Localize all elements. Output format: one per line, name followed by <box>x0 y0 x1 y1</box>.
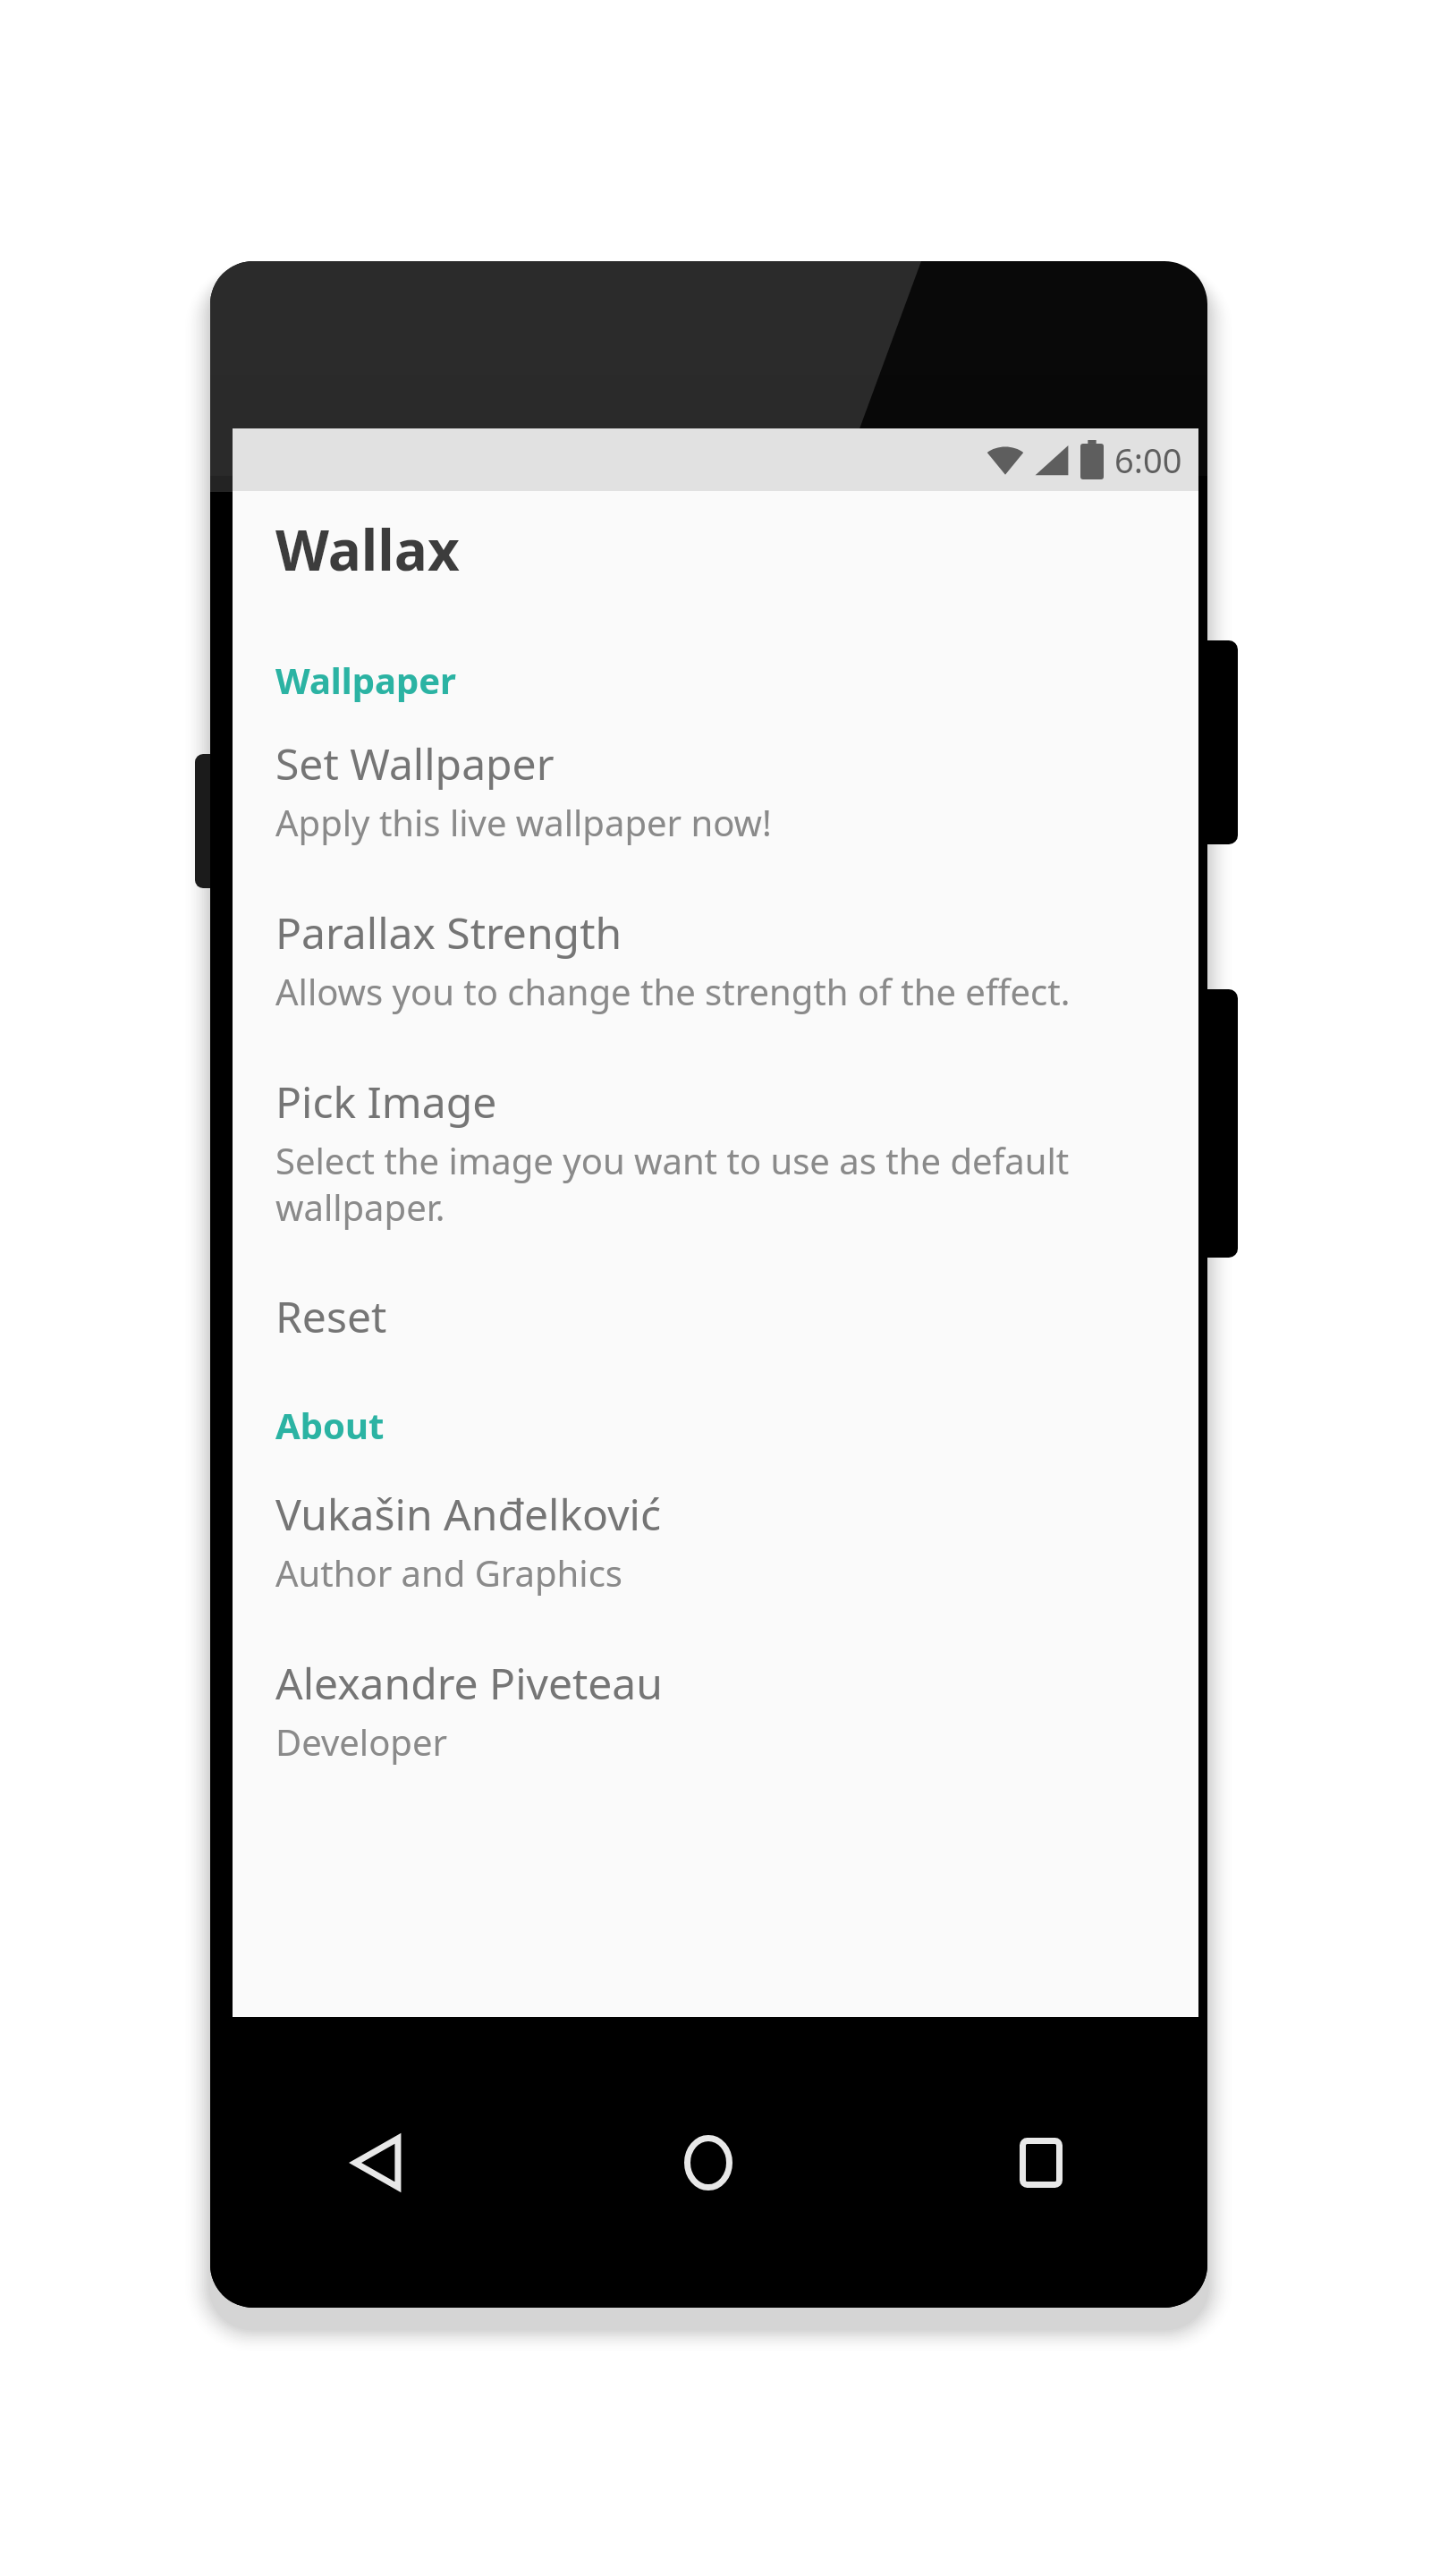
button[interactable]: Vukašin Anđelković <box>233 1449 1198 1597</box>
staticText: Parallax Strength <box>275 903 622 962</box>
staticText: Set Wallpaper <box>275 734 555 792</box>
button[interactable]: Set Wallpaper <box>233 704 1198 846</box>
staticText: Reset <box>275 1287 387 1345</box>
staticText: Select the image you want to use as the … <box>275 1136 1156 1232</box>
button[interactable]: Pick Image <box>233 1015 1198 1232</box>
button[interactable]: Back <box>210 2017 542 2308</box>
staticText: Wallpaper <box>275 656 456 704</box>
staticText: Pick Image <box>275 1072 497 1131</box>
button[interactable]: Home <box>542 2017 875 2308</box>
staticText: 6:00 <box>1114 436 1182 483</box>
staticText: Allows you to change the strength of the… <box>275 967 1071 1015</box>
staticText: Apply this live wallpaper now! <box>275 798 772 846</box>
button[interactable]: Reset <box>233 1232 1198 1345</box>
staticText: About <box>275 1401 385 1449</box>
button[interactable]: Recent apps <box>875 2017 1207 2308</box>
staticText: Developer <box>275 1717 448 1766</box>
staticText: Vukašin Anđelković <box>275 1485 661 1543</box>
button[interactable]: Alexandre Piveteau <box>233 1597 1198 1766</box>
staticText: Wallax <box>275 512 460 587</box>
button[interactable]: Parallax Strength <box>233 846 1198 1015</box>
staticText: Author and Graphics <box>275 1548 622 1597</box>
staticText: Alexandre Piveteau <box>275 1654 663 1712</box>
